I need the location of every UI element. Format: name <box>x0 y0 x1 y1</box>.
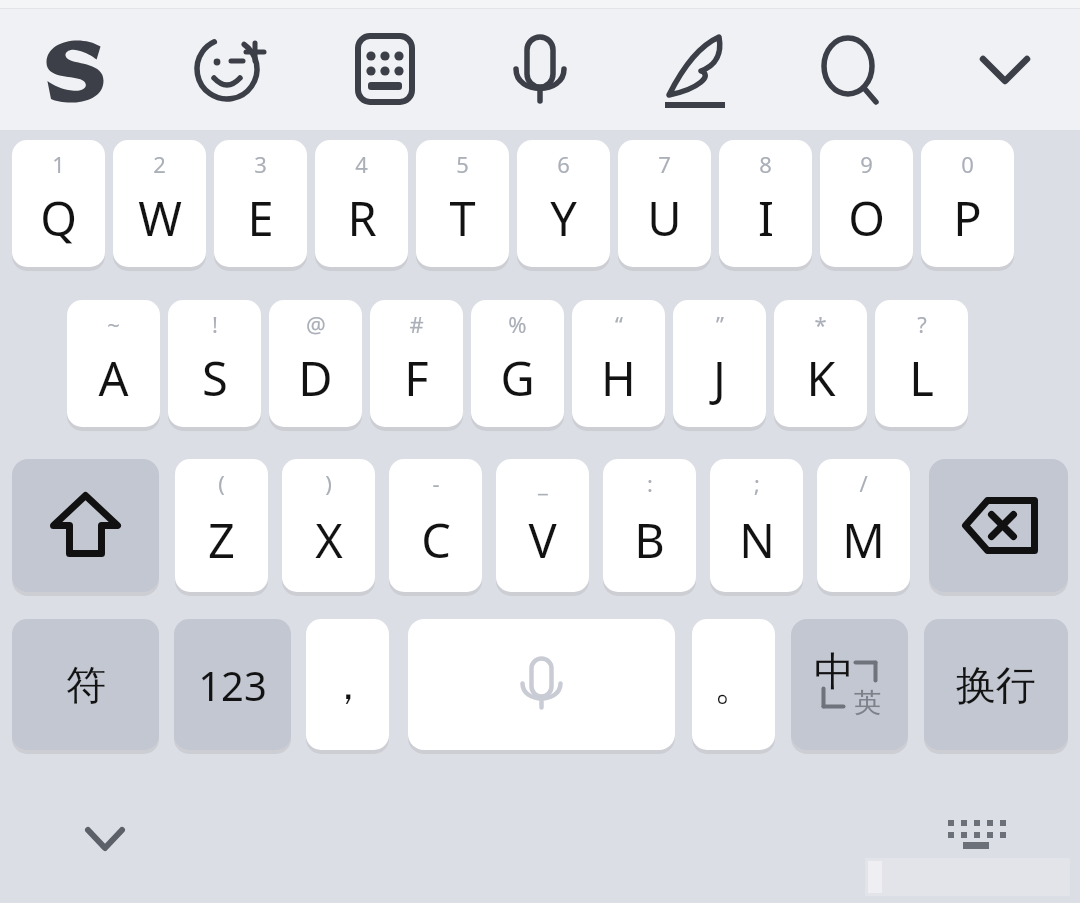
staticText: 6 <box>557 149 570 179</box>
button[interactable]: Shift <box>12 459 159 592</box>
staticText: 符 <box>66 660 106 710</box>
button[interactable]: / <box>817 459 910 592</box>
button[interactable]: Enter <box>924 619 1068 750</box>
staticText: - <box>432 468 440 498</box>
staticText: “ <box>615 309 623 339</box>
button[interactable]: Backspace <box>929 459 1068 592</box>
button[interactable]: Symbols <box>12 619 159 750</box>
button[interactable]: 8 <box>719 140 812 267</box>
staticText: C <box>421 508 451 572</box>
staticText: H <box>601 346 636 410</box>
button[interactable]: 6 <box>517 140 610 267</box>
staticText: U <box>647 186 682 250</box>
staticText: K <box>806 346 836 410</box>
button[interactable]: 2 <box>113 140 206 267</box>
staticText: 9 <box>860 149 873 179</box>
staticText: R <box>347 186 377 250</box>
button[interactable]: 1 <box>12 140 105 267</box>
button[interactable]: ; <box>710 459 803 592</box>
button[interactable]: Voice input <box>495 28 585 110</box>
staticText: 1 <box>52 149 65 179</box>
staticText: P <box>953 186 982 250</box>
button[interactable]: Sogou input <box>30 28 120 110</box>
staticText: _ <box>538 468 548 498</box>
button[interactable]: Space <box>408 619 675 750</box>
staticText: T <box>449 186 476 250</box>
staticText: N <box>739 508 775 572</box>
button[interactable]: Numbers <box>174 619 291 750</box>
button[interactable]: 7 <box>618 140 711 267</box>
staticText: D <box>298 346 333 410</box>
button[interactable]: 0 <box>921 140 1014 267</box>
staticText: 。 <box>714 660 754 710</box>
staticText: O <box>848 186 885 250</box>
button[interactable]: ) <box>282 459 375 592</box>
button[interactable]: ~ <box>67 300 160 427</box>
staticText: 123 <box>198 658 267 712</box>
staticText: I <box>758 186 774 250</box>
button[interactable]: 5 <box>416 140 509 267</box>
button[interactable]: Collapse keyboard <box>960 28 1050 110</box>
button[interactable]: # <box>370 300 463 427</box>
button[interactable]: Handwriting <box>650 28 740 110</box>
button[interactable]: - <box>389 459 482 592</box>
staticText: ” <box>716 309 724 339</box>
staticText: Q <box>40 186 77 250</box>
staticText: # <box>409 309 424 339</box>
staticText: Y <box>550 186 577 250</box>
button[interactable]: Hide keyboard <box>55 800 155 875</box>
staticText: S <box>202 346 228 410</box>
staticText: : <box>647 468 653 498</box>
staticText: ( <box>218 468 225 498</box>
staticText: X <box>315 508 343 572</box>
button[interactable]: Search <box>805 28 895 110</box>
button[interactable]: % <box>471 300 564 427</box>
staticText: A <box>98 346 129 410</box>
staticText: * <box>814 309 827 339</box>
button[interactable]: _ <box>496 459 589 592</box>
staticText: ) <box>325 468 332 498</box>
staticText: 换行 <box>956 660 1036 710</box>
button[interactable]: ? <box>875 300 968 427</box>
staticText: V <box>528 508 557 572</box>
staticText: M <box>842 508 885 572</box>
staticText: 0 <box>961 149 974 179</box>
staticText: J <box>713 346 726 410</box>
staticText: 中 <box>814 646 854 696</box>
button[interactable]: Chinese English toggle <box>791 619 908 750</box>
staticText: / <box>859 468 868 498</box>
button[interactable]: : <box>603 459 696 592</box>
staticText: 2 <box>153 149 166 179</box>
staticText: ; <box>754 468 760 498</box>
staticText: F <box>404 346 429 410</box>
staticText: ! <box>212 309 218 339</box>
staticText: Z <box>208 508 235 572</box>
button[interactable]: * <box>774 300 867 427</box>
button[interactable]: ! <box>168 300 261 427</box>
staticText: 3 <box>254 149 267 179</box>
button[interactable]: Comma <box>306 619 389 750</box>
button[interactable]: 4 <box>315 140 408 267</box>
staticText: 5 <box>456 149 469 179</box>
button[interactable]: 3 <box>214 140 307 267</box>
staticText: 英 <box>854 686 881 720</box>
button[interactable]: @ <box>269 300 362 427</box>
staticText: W <box>138 186 182 250</box>
staticText: 4 <box>355 149 368 179</box>
button[interactable]: 9 <box>820 140 913 267</box>
staticText: 7 <box>658 149 671 179</box>
staticText: G <box>500 346 535 410</box>
button[interactable]: Period <box>692 619 775 750</box>
button[interactable]: ( <box>175 459 268 592</box>
button[interactable]: Keyboard layout <box>340 28 430 110</box>
button[interactable]: Emoji <box>185 28 275 110</box>
staticText: 8 <box>759 149 772 179</box>
staticText: % <box>508 309 527 339</box>
button[interactable]: ” <box>673 300 766 427</box>
button[interactable]: “ <box>572 300 665 427</box>
staticText: E <box>247 186 274 250</box>
button[interactable]: Switch keyboard <box>925 800 1025 875</box>
staticText: ~ <box>107 309 120 339</box>
staticText: @ <box>306 309 326 339</box>
staticText: B <box>634 508 665 572</box>
